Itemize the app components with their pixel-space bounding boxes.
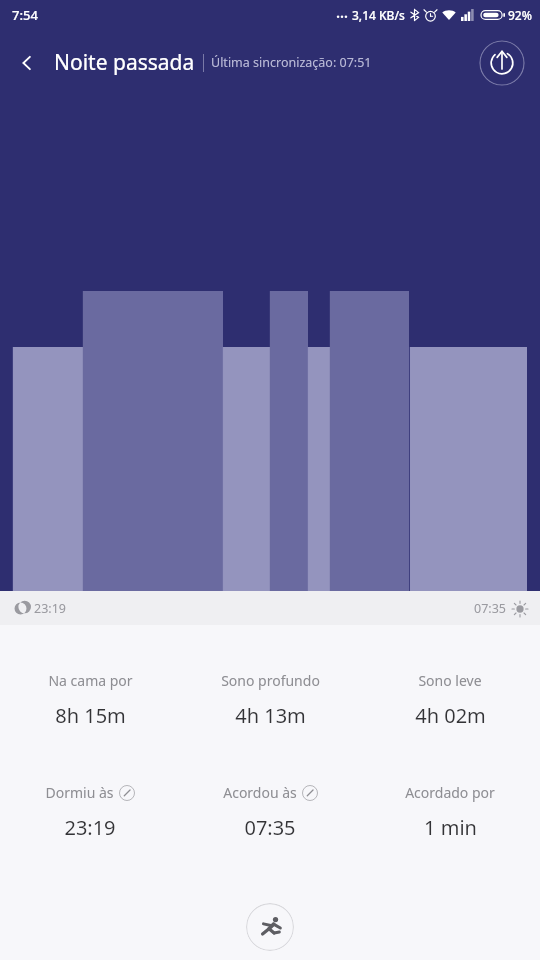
staticText: 23:19 [64, 814, 116, 841]
staticText: 07:35 [474, 600, 506, 617]
button[interactable]: Sync [479, 40, 525, 86]
staticText: 3,14 KB/s [352, 7, 405, 23]
staticText: Sono leve [418, 671, 482, 690]
staticText: 8h 15m [55, 702, 126, 729]
staticText: Acordado por [405, 783, 495, 802]
staticText: Acordou às [223, 783, 297, 802]
button[interactable]: Back [6, 42, 48, 84]
button[interactable]: Sono leve [360, 671, 540, 729]
staticText: 23:19 [34, 600, 66, 617]
staticText: Noite passada [54, 48, 195, 77]
staticText: Sono profundo [221, 671, 320, 690]
staticText: 7:54 [12, 6, 38, 24]
staticText: Dormiu às [45, 783, 114, 802]
button[interactable]: Activity [246, 903, 294, 951]
staticText: 1 min [424, 814, 477, 841]
button[interactable]: Dormiu às [0, 783, 180, 841]
staticText: Na cama por [48, 671, 133, 690]
button[interactable]: Na cama por [0, 671, 180, 729]
button[interactable]: Sono profundo [180, 671, 360, 729]
staticText: 92% [508, 7, 532, 23]
button[interactable]: Acordado por [360, 783, 540, 841]
staticText: Última sincronização: 07:51 [211, 54, 372, 71]
staticText: 4h 02m [415, 702, 486, 729]
button[interactable]: Acordou às [180, 783, 360, 841]
staticText: 07:35 [244, 814, 296, 841]
staticText: 4h 13m [235, 702, 306, 729]
